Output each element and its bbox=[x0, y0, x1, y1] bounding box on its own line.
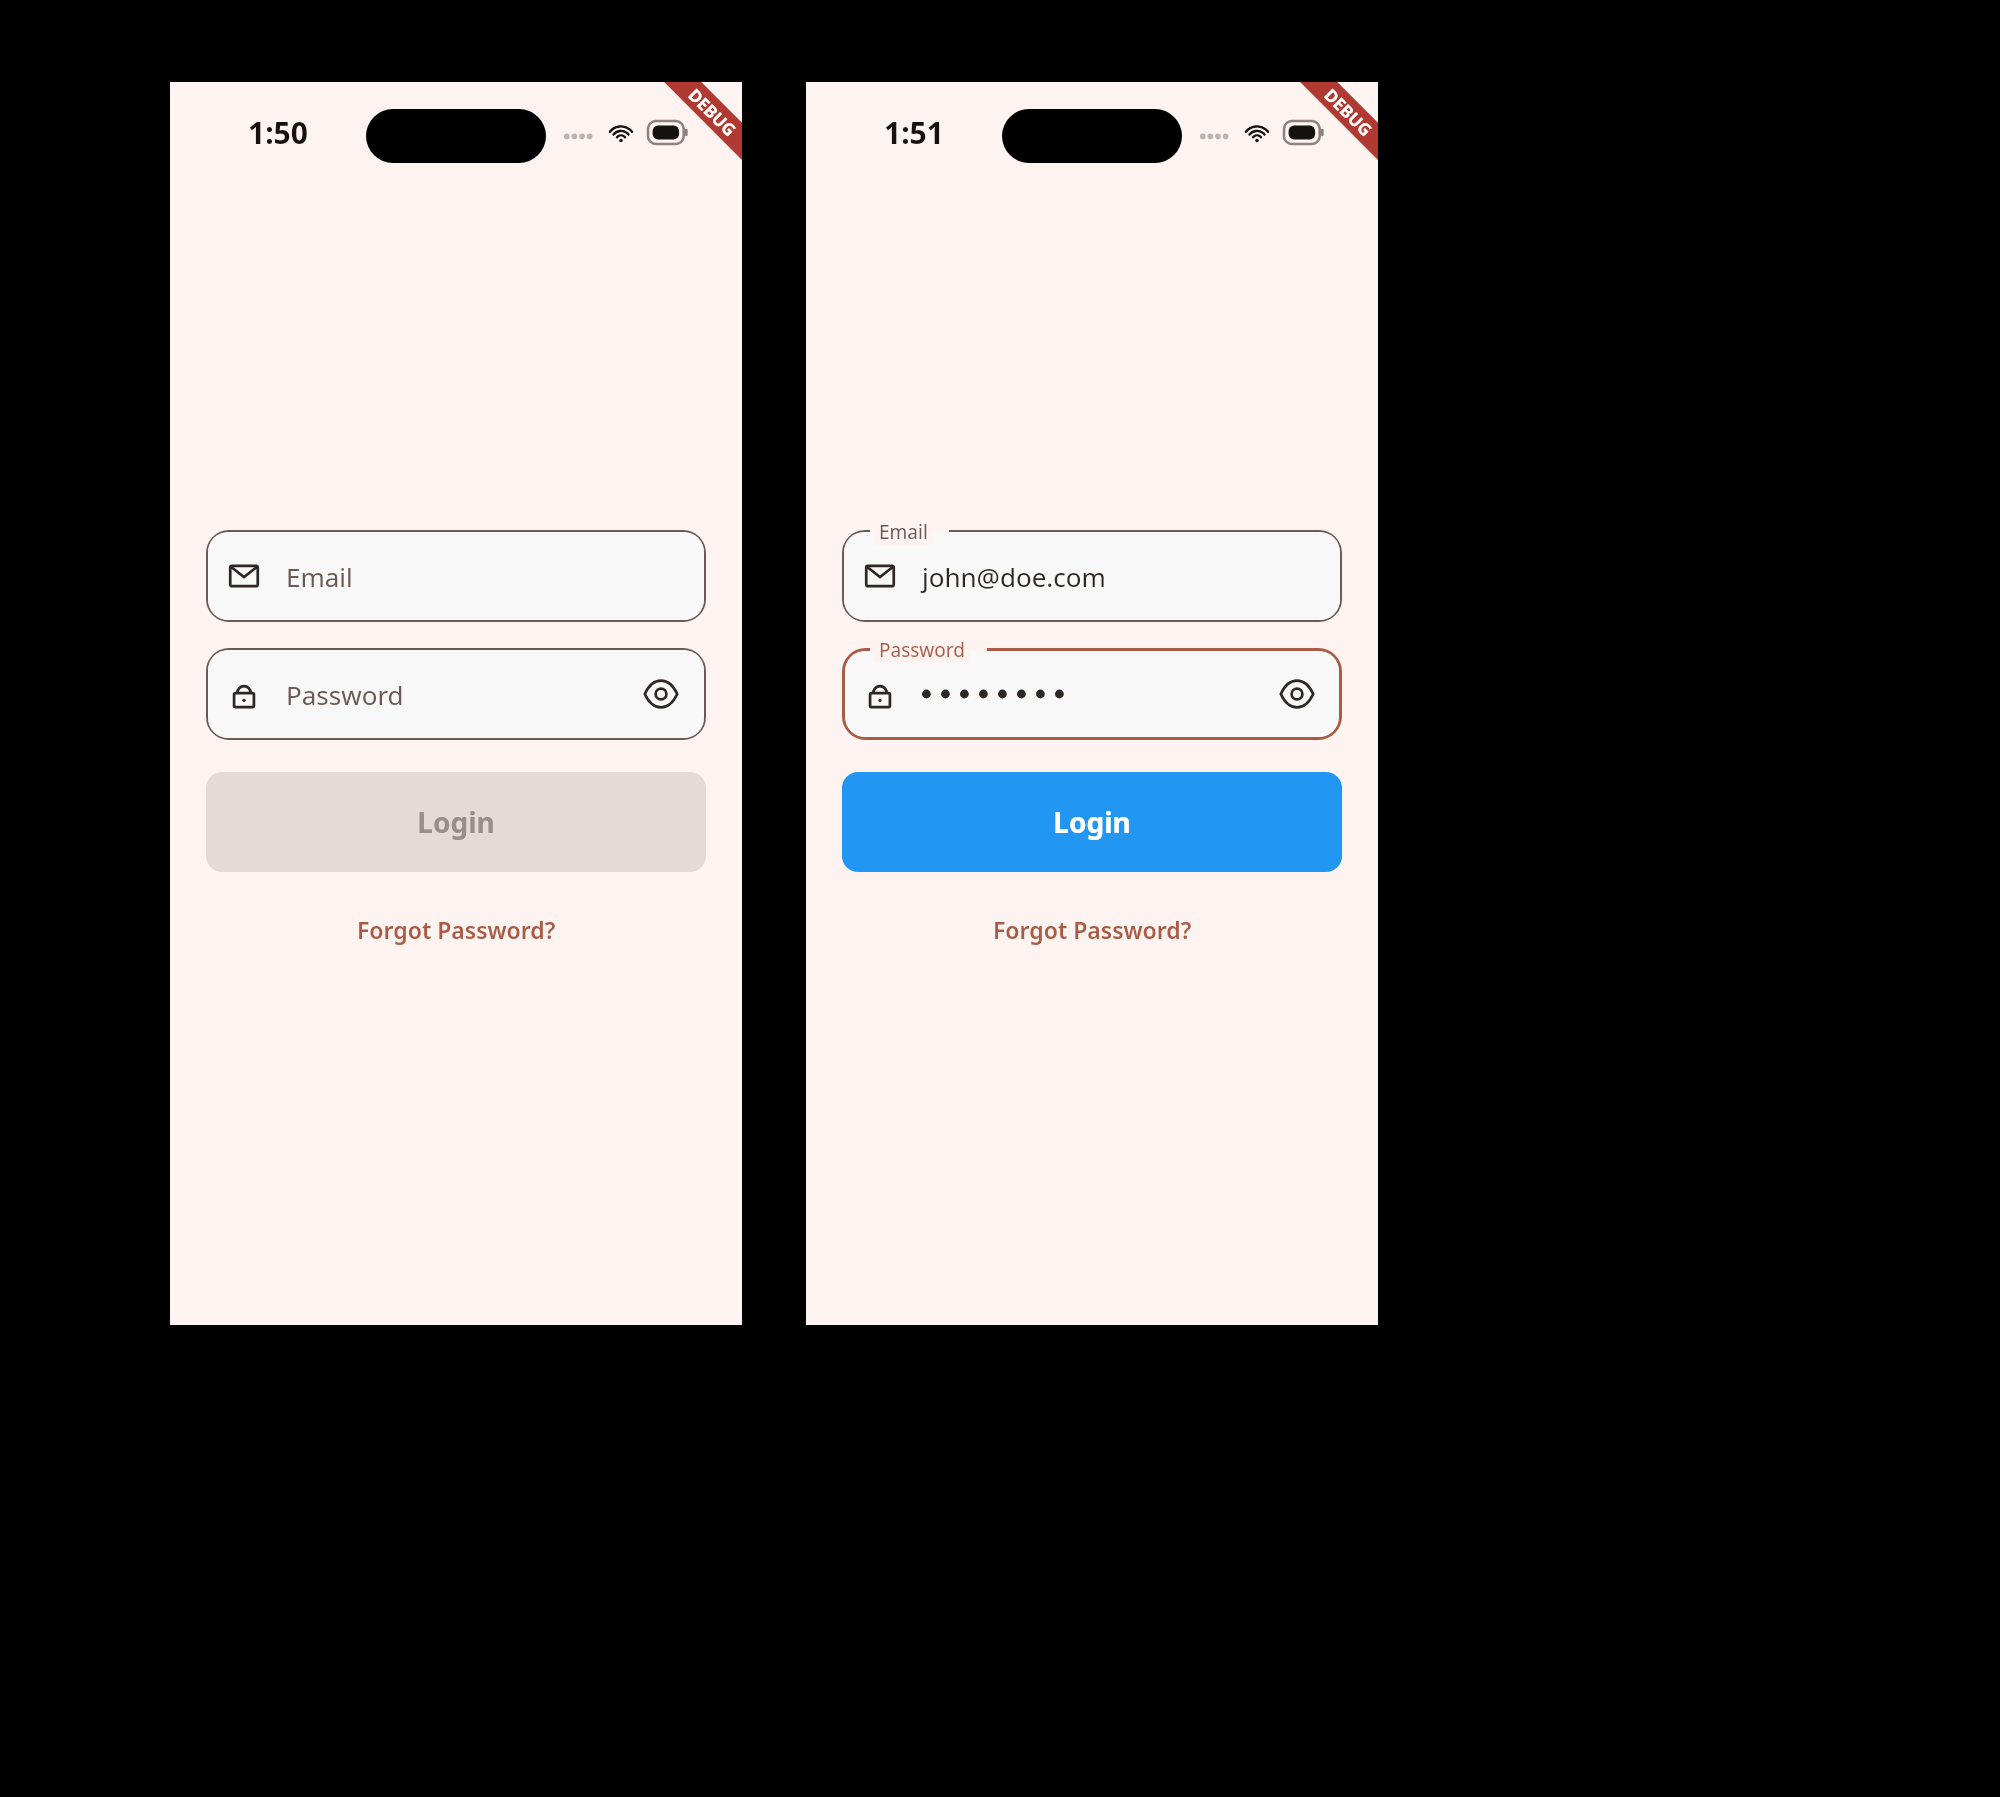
staticText: john@doe.com bbox=[922, 559, 1106, 594]
staticText: Password bbox=[286, 677, 404, 712]
staticText: Forgot Password? bbox=[357, 914, 556, 945]
button[interactable]: Email bbox=[842, 530, 1342, 622]
other: Email bbox=[864, 560, 896, 592]
staticText: Forgot Password? bbox=[993, 914, 1192, 945]
staticText: 1:51 bbox=[884, 112, 944, 153]
button[interactable]: Forgot Password? bbox=[842, 906, 1342, 953]
button[interactable]: Toggle password visibility bbox=[1274, 671, 1320, 717]
staticText: Email bbox=[879, 519, 928, 545]
button[interactable]: Login bbox=[842, 772, 1342, 872]
other: Email bbox=[228, 560, 260, 592]
other: Password bbox=[228, 678, 260, 710]
button[interactable]: Login bbox=[206, 772, 706, 872]
button[interactable]: Toggle password visibility bbox=[638, 671, 684, 717]
staticText: Email bbox=[286, 559, 353, 594]
other: Password bbox=[864, 678, 896, 710]
staticText: 1:50 bbox=[248, 112, 308, 153]
button[interactable]: Password bbox=[842, 648, 1342, 740]
staticText: Login bbox=[1053, 803, 1131, 841]
staticText: Login bbox=[417, 803, 495, 841]
button[interactable]: Forgot Password? bbox=[206, 906, 706, 953]
button[interactable]: Password bbox=[206, 648, 706, 740]
staticText: Password bbox=[879, 637, 965, 663]
button[interactable]: Email bbox=[206, 530, 706, 622]
staticText: DEBUG bbox=[683, 83, 741, 141]
staticText: DEBUG bbox=[1319, 83, 1377, 141]
